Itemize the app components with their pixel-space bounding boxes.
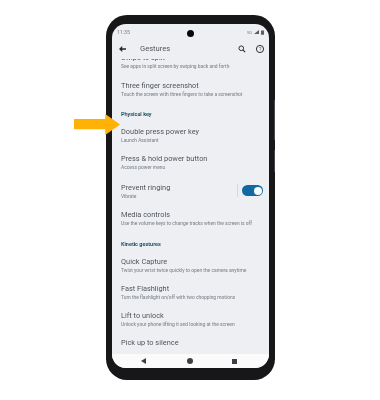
button[interactable]: Back bbox=[136, 354, 150, 368]
button[interactable]: Prevent ringing toggle, on bbox=[242, 185, 263, 196]
button[interactable]: Navigate back bbox=[112, 40, 132, 57]
staticText: Turn the flashlight on/off with two chop… bbox=[121, 294, 236, 300]
staticText: Touch the screen with three fingers to t… bbox=[121, 91, 243, 97]
staticText: Unlock your phone lifting it and looking… bbox=[121, 321, 235, 327]
staticText: Gestures bbox=[140, 44, 171, 53]
button[interactable]: Three finger screenshot bbox=[112, 69, 269, 97]
button[interactable]: Quick Capture bbox=[112, 247, 269, 273]
staticText: Double press power key bbox=[121, 127, 200, 136]
staticText: Media controls bbox=[121, 210, 171, 219]
button[interactable]: Search bbox=[235, 40, 249, 57]
staticText: Use the volume keys to change tracks whe… bbox=[121, 220, 252, 226]
staticText: Press & hold power button bbox=[121, 154, 208, 163]
button[interactable]: Double press power key bbox=[112, 117, 269, 143]
button[interactable]: Swipe to split bbox=[112, 59, 269, 69]
staticText: Prevent ringing bbox=[121, 183, 171, 192]
button[interactable]: Lift to unlock bbox=[112, 300, 269, 327]
staticText: Quick Capture bbox=[121, 257, 168, 266]
staticText: Physical key bbox=[121, 111, 152, 117]
staticText: See apps in split screen by swiping back… bbox=[121, 63, 230, 69]
button[interactable]: Press & hold power button bbox=[112, 143, 269, 170]
staticText: 5G bbox=[247, 30, 252, 35]
staticText: Lift to unlock bbox=[121, 311, 164, 320]
staticText: Pick up to silence bbox=[121, 338, 179, 347]
button[interactable]: Recent apps bbox=[227, 354, 241, 368]
staticText: Kinetic gestures bbox=[121, 241, 161, 247]
button[interactable]: Media controls bbox=[112, 199, 269, 226]
staticText: ? bbox=[259, 46, 262, 52]
staticText: Vibrate bbox=[121, 193, 137, 199]
button[interactable]: Fast Flashlight bbox=[112, 273, 269, 300]
button[interactable]: Home bbox=[183, 354, 197, 368]
staticText: Swipe to split bbox=[121, 59, 166, 62]
button[interactable]: Prevent ringing bbox=[112, 170, 269, 199]
button[interactable]: Help bbox=[253, 40, 267, 57]
staticText: Launch Assistant bbox=[121, 137, 159, 143]
staticText: 11:35 bbox=[117, 29, 130, 35]
staticText: Fast Flashlight bbox=[121, 284, 170, 293]
button[interactable]: Pick up to silence bbox=[112, 327, 269, 348]
staticText: Three finger screenshot bbox=[121, 81, 199, 90]
staticText: Twist your wrist twice quickly to open t… bbox=[121, 267, 247, 273]
staticText: Access power menu bbox=[121, 164, 166, 170]
